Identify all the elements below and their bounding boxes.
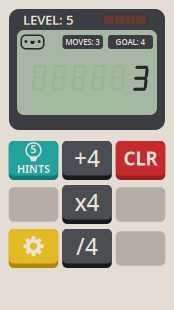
staticText: GOAL: 4 [115, 37, 145, 47]
button[interactable]: x4 [62, 185, 112, 224]
staticText: MOVES: 3 [65, 37, 100, 47]
staticText: CLR [123, 146, 157, 171]
staticText: HINTS [17, 162, 50, 176]
staticText: +4 [74, 143, 100, 173]
button[interactable] [9, 229, 58, 268]
staticText: /4 [76, 231, 98, 261]
staticText: 5 [30, 142, 36, 156]
staticText: x4 [74, 187, 99, 217]
button[interactable]: CLR [116, 141, 165, 180]
staticText: LEVEL: 5 [23, 11, 74, 28]
button[interactable]: +4 [62, 141, 112, 180]
button[interactable]: 5 [9, 141, 58, 180]
button[interactable]: /4 [62, 229, 112, 268]
